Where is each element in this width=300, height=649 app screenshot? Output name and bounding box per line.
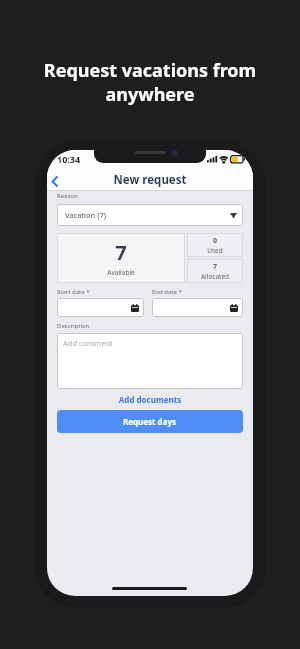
staticText: Description: [57, 322, 90, 330]
staticText: Allocated: [187, 272, 243, 281]
button[interactable]: Vacation (7): [57, 204, 243, 226]
button[interactable]: Add comment: [57, 333, 243, 389]
staticText: Used: [187, 246, 243, 255]
staticText: 10:34: [57, 153, 81, 165]
button[interactable]: Request days: [57, 410, 243, 433]
staticText: Reason: [57, 192, 78, 200]
staticText: End date *: [152, 288, 182, 296]
staticText: Start date *: [57, 288, 90, 296]
staticText: Vacation (7): [65, 210, 106, 220]
staticText: Add comment: [63, 338, 113, 348]
staticText: Request days: [123, 416, 177, 427]
staticText: Request vacations from anywhere: [0, 58, 300, 106]
staticText: New request: [47, 172, 253, 188]
staticText: Available: [57, 268, 185, 277]
button[interactable]: [51, 176, 58, 187]
button[interactable]: [57, 298, 144, 317]
button[interactable]: Add documents: [47, 394, 253, 405]
button[interactable]: [152, 298, 243, 317]
staticText: 7: [187, 262, 243, 272]
staticText: 7: [57, 239, 185, 266]
staticText: 0: [187, 236, 243, 246]
